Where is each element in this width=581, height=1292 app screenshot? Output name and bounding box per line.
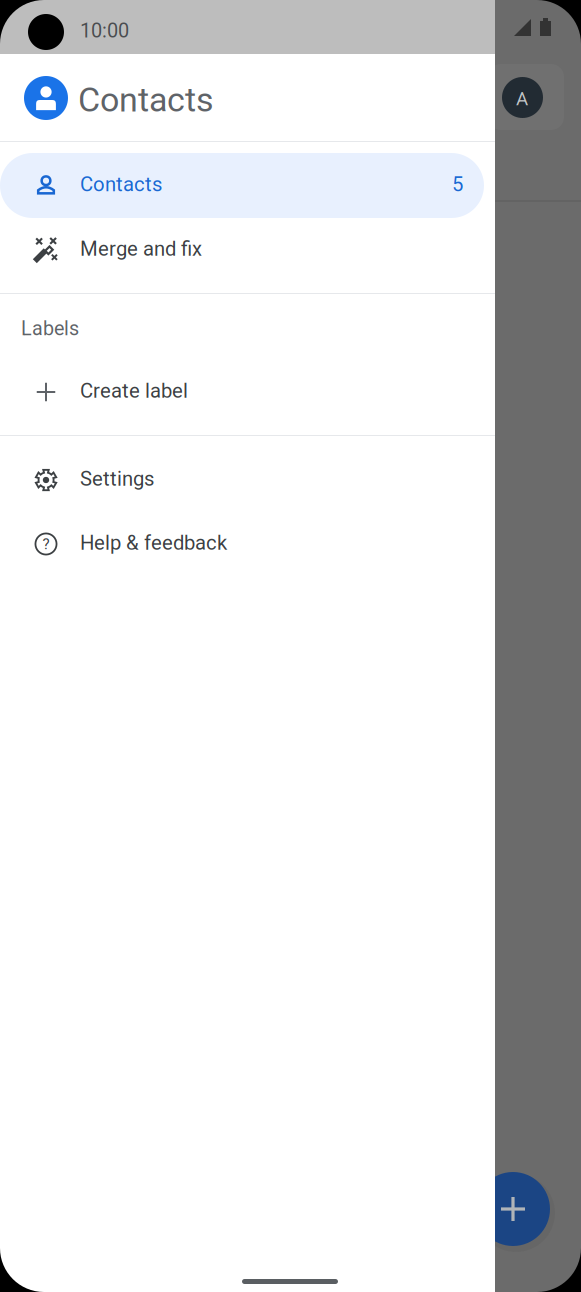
staticText: Contacts — [80, 172, 162, 196]
staticText: Create label — [80, 379, 188, 403]
staticText: ? — [42, 535, 49, 553]
staticText: 10:00 — [80, 19, 129, 42]
button[interactable]: Contacts — [0, 153, 495, 218]
staticText: Settings — [80, 467, 154, 491]
staticText: A — [516, 88, 528, 110]
button[interactable]: Merge and fix — [0, 218, 495, 282]
staticText: 5 — [452, 172, 463, 196]
staticText: Help & feedback — [80, 531, 227, 555]
staticText: Contacts — [78, 80, 214, 120]
button[interactable]: Create label — [0, 360, 495, 424]
button[interactable]: Settings — [0, 448, 495, 512]
button[interactable]: ? — [0, 512, 495, 576]
staticText: Labels — [21, 317, 79, 340]
staticText: Merge and fix — [80, 237, 202, 261]
